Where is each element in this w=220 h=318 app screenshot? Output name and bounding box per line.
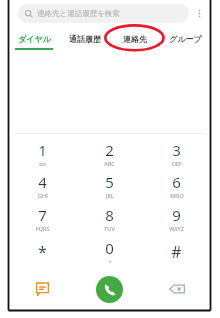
staticText: 1: [38, 140, 47, 160]
staticText: 9: [172, 205, 181, 225]
staticText: 6: [172, 172, 181, 192]
button[interactable]: 5: [76, 169, 143, 202]
staticText: 3: [172, 140, 181, 160]
button[interactable]: 連絡先: [110, 26, 160, 51]
staticText: 通話履歴: [69, 34, 101, 44]
staticText: 0: [105, 238, 114, 258]
button[interactable]: グループ: [160, 26, 210, 51]
button[interactable]: Send SMS: [9, 268, 76, 310]
staticText: ダイヤル: [18, 34, 51, 44]
button[interactable]: 3: [143, 137, 210, 169]
staticText: WXYZ: [169, 225, 184, 232]
staticText: +: [108, 258, 112, 265]
staticText: GHI: [38, 192, 48, 199]
button[interactable]: *: [9, 235, 76, 268]
button[interactable]: 7: [9, 202, 76, 235]
staticText: MNO: [170, 192, 184, 199]
button[interactable]: 2: [76, 137, 143, 169]
button[interactable]: 6: [143, 169, 210, 202]
button[interactable]: 通話履歴: [60, 26, 110, 51]
button[interactable]: More options: [189, 3, 209, 23]
staticText: PQRS: [35, 225, 50, 232]
staticText: JKL: [106, 192, 114, 199]
staticText: oo: [39, 160, 46, 167]
button[interactable]: 連絡先と通話履歴を検索: [18, 4, 189, 23]
button[interactable]: Backspace: [143, 268, 210, 310]
button[interactable]: 8: [76, 202, 143, 235]
staticText: 5: [105, 172, 114, 192]
staticText: #: [171, 241, 182, 263]
button[interactable]: 0: [76, 235, 143, 268]
button[interactable]: ダイヤル: [9, 26, 60, 51]
staticText: TUV: [104, 225, 115, 232]
staticText: 2: [105, 140, 114, 160]
button[interactable]: 9: [143, 202, 210, 235]
staticText: 連絡先: [123, 34, 147, 44]
staticText: DEF: [172, 160, 182, 167]
button[interactable]: 4: [9, 169, 76, 202]
button[interactable]: #: [143, 235, 210, 268]
staticText: 7: [38, 205, 47, 225]
staticText: 4: [38, 172, 47, 192]
staticText: 8: [105, 205, 114, 225]
staticText: ABC: [104, 160, 115, 167]
button[interactable]: 1: [9, 137, 76, 169]
button[interactable]: Call: [76, 268, 143, 310]
staticText: *: [38, 241, 47, 263]
staticText: 連絡先と通話履歴を検索: [37, 9, 120, 18]
staticText: グループ: [169, 34, 202, 44]
